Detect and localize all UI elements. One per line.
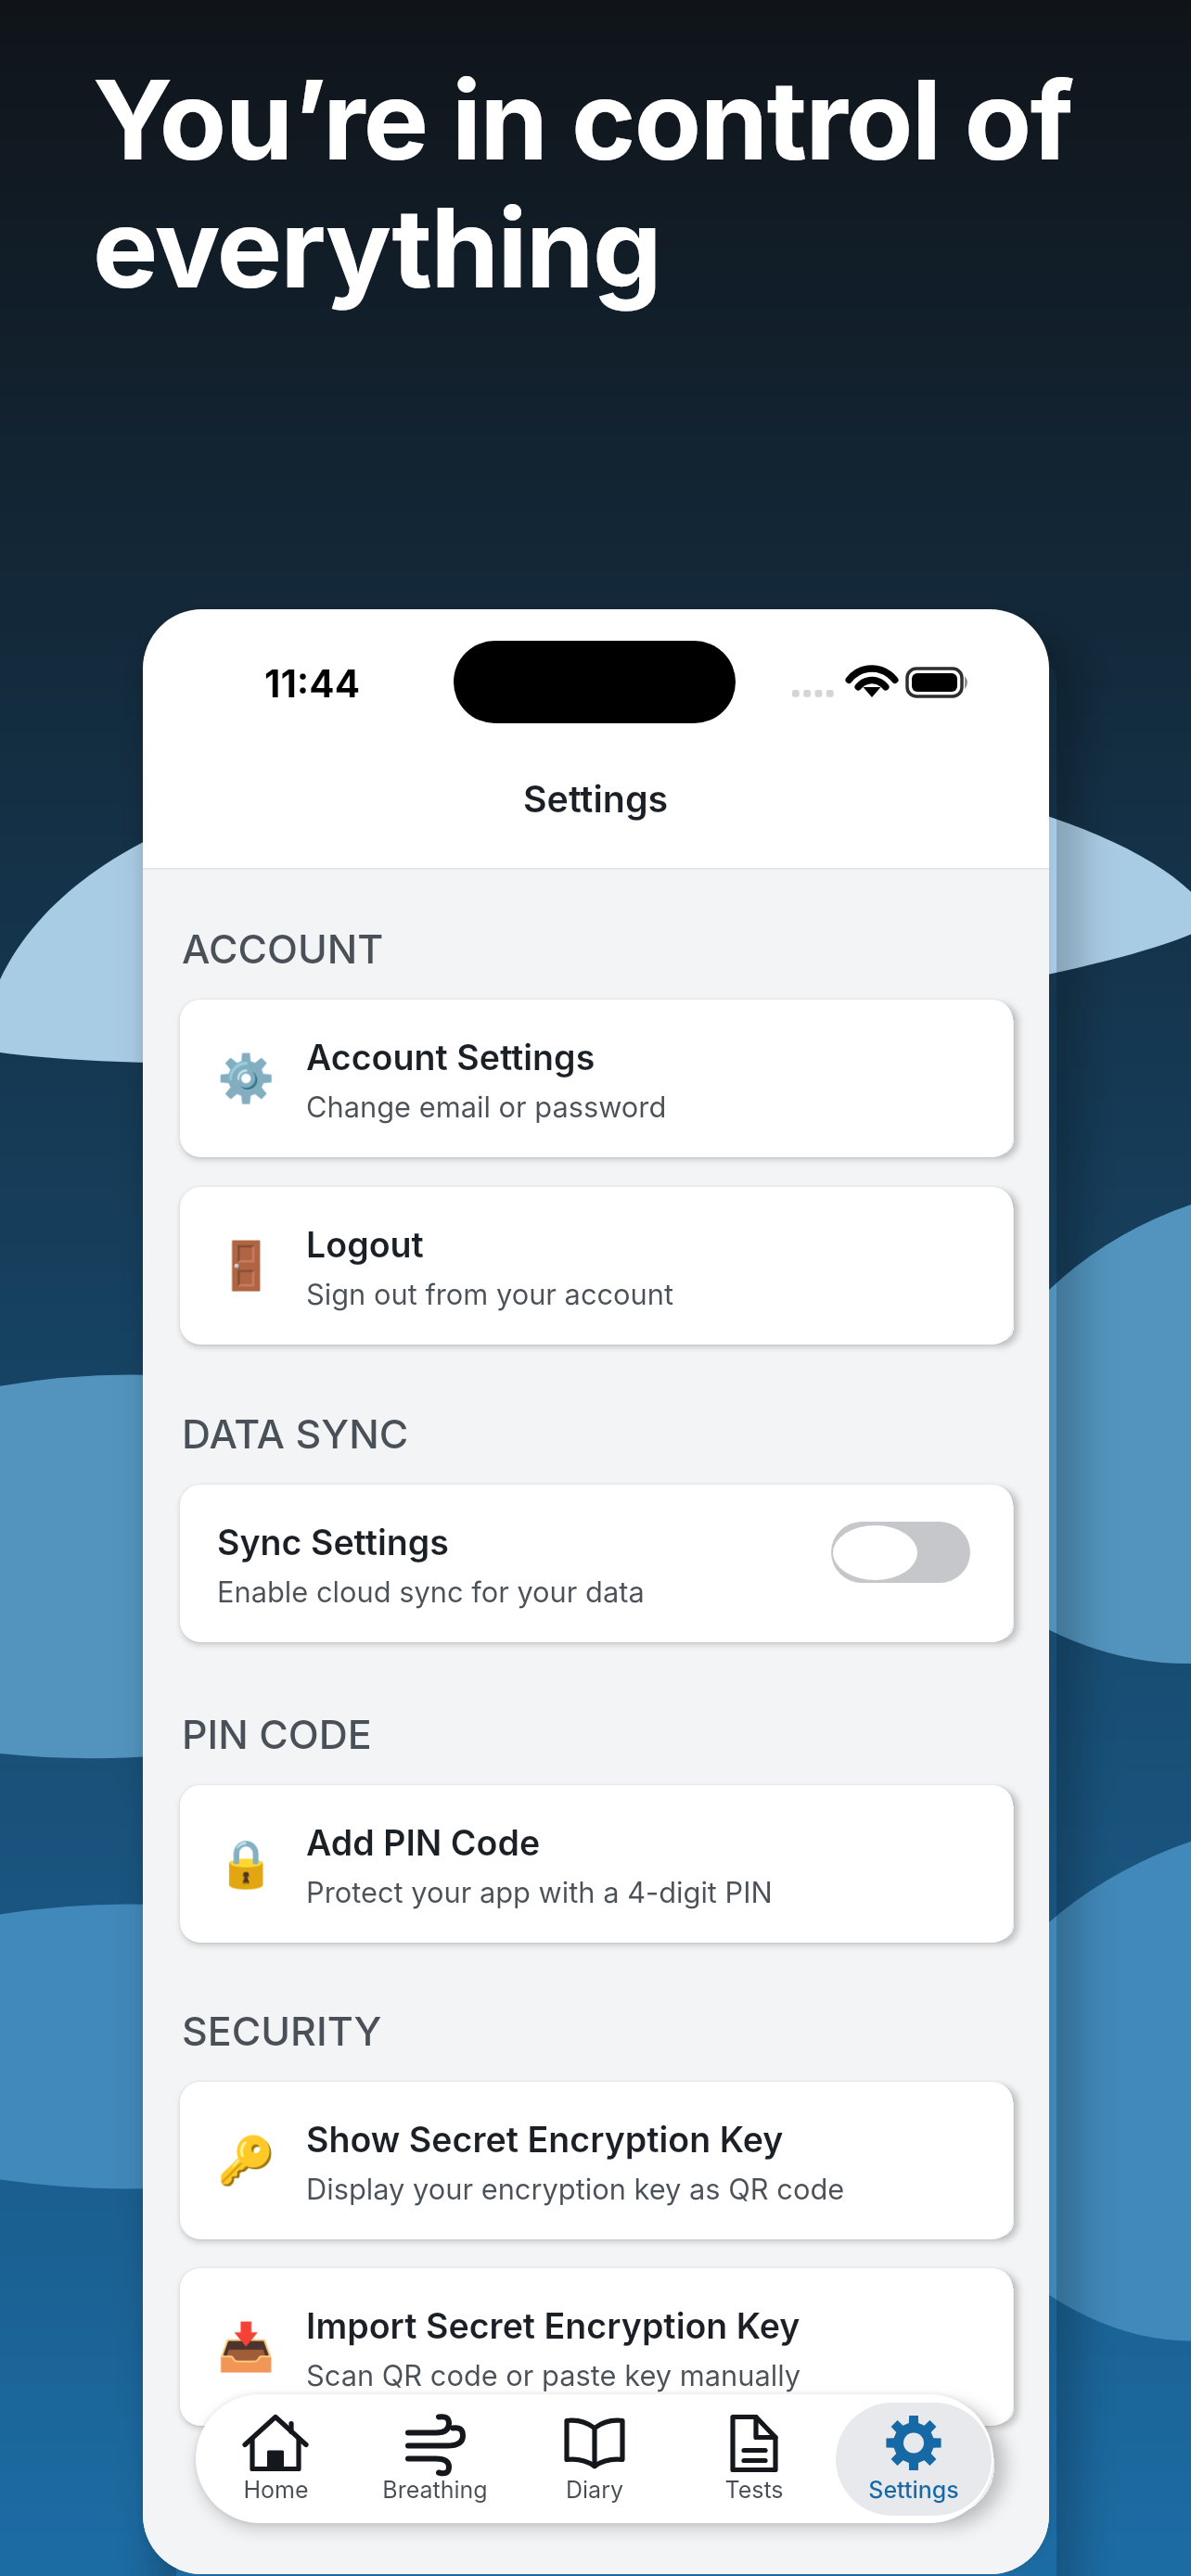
staticText: Show Secret Encryption Key bbox=[306, 2119, 784, 2161]
staticText: DATA SYNC bbox=[182, 1409, 409, 1458]
staticText: Breathing bbox=[382, 2476, 488, 2504]
staticText: Add PIN Code bbox=[306, 1822, 541, 1864]
staticText: 11:44 bbox=[264, 661, 360, 707]
staticText: Tests bbox=[724, 2476, 784, 2504]
button[interactable]: 🔑 bbox=[180, 2082, 1013, 2239]
staticText: Logout bbox=[306, 1224, 424, 1266]
button[interactable]: 📥 bbox=[180, 2268, 1013, 2426]
staticText: 🔑 bbox=[217, 2134, 275, 2188]
staticText: Sign out from your account bbox=[306, 1277, 674, 1311]
staticText: Settings bbox=[868, 2476, 959, 2504]
button[interactable]: 🔒 bbox=[180, 1785, 1013, 1943]
staticText: 🚪 bbox=[217, 1239, 275, 1294]
staticText: You’re in control of everything bbox=[93, 54, 1076, 313]
button[interactable]: Settings bbox=[836, 2403, 992, 2516]
staticText: Enable cloud sync for your data bbox=[217, 1575, 645, 1609]
button[interactable]: Breathing bbox=[357, 2403, 513, 2516]
staticText: SECURITY bbox=[182, 2007, 382, 2055]
button[interactable]: Sync Settings bbox=[180, 1485, 1013, 1642]
staticText: Diary bbox=[566, 2476, 623, 2504]
staticText: Account Settings bbox=[306, 1037, 595, 1078]
staticText: 🔒 bbox=[217, 1837, 275, 1892]
button[interactable]: Diary bbox=[517, 2403, 672, 2516]
staticText: Import Secret Encryption Key bbox=[306, 2305, 800, 2347]
staticText: Scan QR code or paste key manually bbox=[306, 2358, 801, 2392]
staticText: ⚙️ bbox=[217, 1052, 275, 1106]
staticText: Home bbox=[243, 2476, 309, 2504]
staticText: ACCOUNT bbox=[182, 925, 384, 973]
button[interactable]: Toggle cloud sync bbox=[831, 1522, 970, 1583]
staticText: Change email or password bbox=[306, 1090, 667, 1124]
button[interactable]: Home bbox=[198, 2403, 353, 2516]
button[interactable]: Tests bbox=[676, 2403, 832, 2516]
button[interactable]: 🚪 bbox=[180, 1187, 1013, 1345]
staticText: 📥 bbox=[217, 2320, 275, 2375]
staticText: PIN CODE bbox=[182, 1710, 372, 1758]
button[interactable]: ⚙️ bbox=[180, 1000, 1013, 1157]
staticText: Protect your app with a 4-digit PIN bbox=[306, 1875, 773, 1909]
staticText: Display your encryption key as QR code bbox=[306, 2172, 845, 2206]
staticText: Settings bbox=[523, 777, 669, 822]
staticText: Sync Settings bbox=[217, 1522, 449, 1563]
